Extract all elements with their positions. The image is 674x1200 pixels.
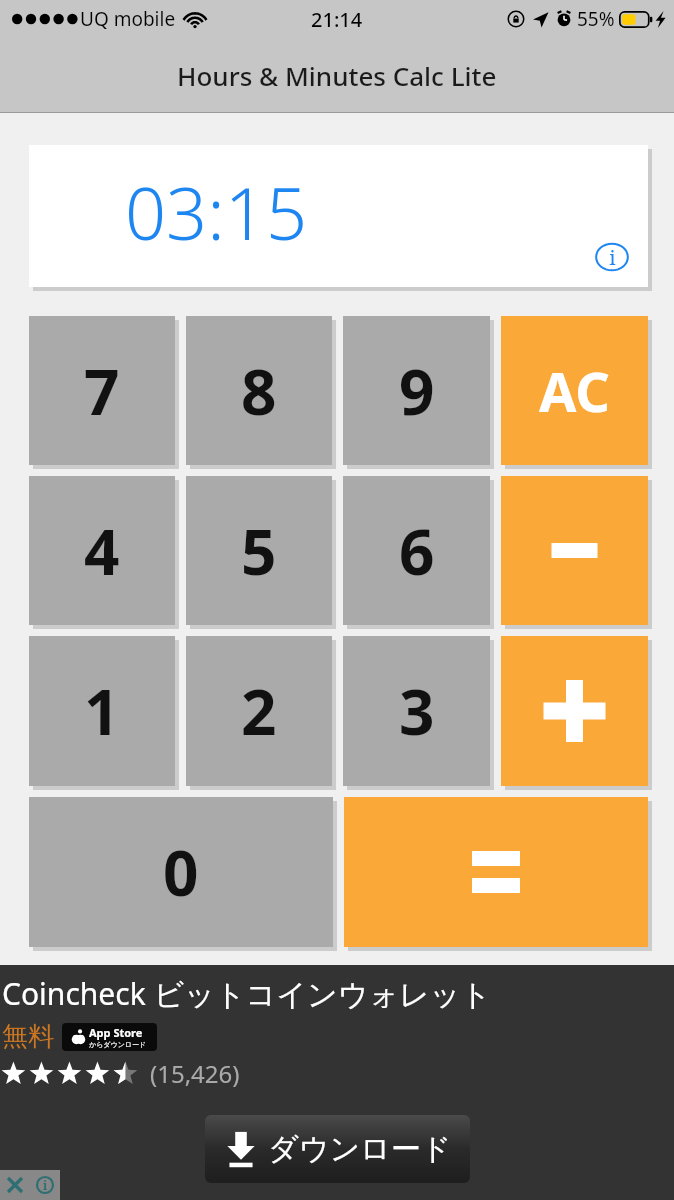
staticText: 2 [241,669,277,753]
button[interactable]: 8 [186,316,332,465]
staticText: 4 [84,509,120,593]
staticText: App Store [89,1025,143,1040]
staticText: UQ mobile [80,6,176,32]
staticText: 5 [241,509,277,593]
button[interactable]: Ad info [30,1170,60,1200]
staticText: i [609,244,616,271]
staticText: 21:14 [311,6,363,33]
staticText: 3 [399,669,435,753]
button[interactable]: 2 [186,636,332,786]
staticText: 03:15 [125,163,308,261]
button[interactable]: Close ad [0,1170,30,1200]
staticText: 6 [399,509,435,593]
staticText: i [43,1177,48,1193]
staticText: (15,426) [150,1057,240,1090]
staticText: Hours & Minutes Calc Lite [177,58,497,93]
button[interactable]: AC [501,316,648,465]
staticText: 0 [163,830,199,914]
staticText: ダウンロード [268,1130,452,1168]
staticText: 8 [241,349,277,433]
staticText: 無料 [2,1020,54,1053]
button[interactable]: 9 [343,316,490,465]
staticText: 7 [84,349,120,433]
button[interactable]: 4 [29,476,175,625]
staticText: 9 [399,349,435,433]
button[interactable]: App Store [62,1023,157,1051]
button[interactable]: 7 [29,316,175,465]
button[interactable]: Plus [501,636,648,786]
button[interactable]: Minus [501,476,648,625]
button[interactable]: 5 [186,476,332,625]
staticText: Coincheck ビットコインウォレット [2,973,492,1014]
button[interactable]: 0 [29,797,333,947]
staticText: AC [539,354,610,428]
staticText: 55% [577,6,615,32]
button[interactable]: ダウンロード [205,1115,470,1183]
button[interactable]: 1 [29,636,175,786]
button[interactable]: 6 [343,476,490,625]
button[interactable]: 3 [343,636,490,786]
button[interactable]: Equals [344,797,648,947]
staticText: からダウンロード [89,1040,147,1049]
staticText: 1 [84,669,120,753]
button[interactable]: Info [594,239,630,275]
